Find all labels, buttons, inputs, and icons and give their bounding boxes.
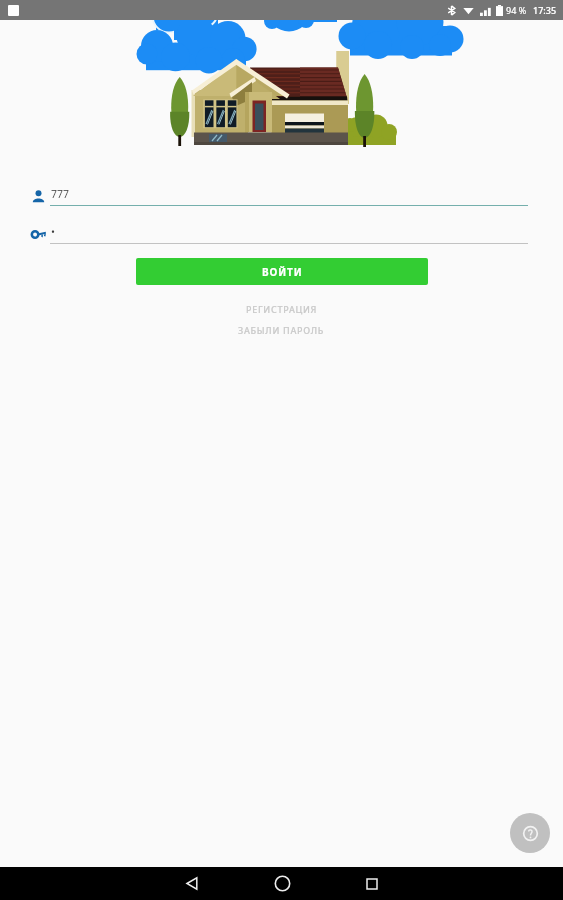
button[interactable]: ВОЙТИ [136, 258, 428, 285]
staticText: • [51, 225, 55, 239]
staticText: ЗАБЫЛИ ПАРОЛЬ [238, 324, 325, 336]
staticText: ВОЙТИ [262, 265, 303, 279]
button[interactable]: Home [252, 867, 312, 900]
button[interactable]: РЕГИСТРАЦИЯ [0, 300, 563, 318]
button[interactable]: Recent apps [342, 867, 402, 900]
staticText: 777 [51, 187, 70, 201]
button[interactable]: Help [510, 813, 550, 853]
staticText: 94 % [506, 4, 527, 16]
button[interactable]: ЗАБЫЛИ ПАРОЛЬ [0, 321, 563, 339]
button[interactable]: Back [162, 867, 222, 900]
staticText: РЕГИСТРАЦИЯ [246, 303, 318, 315]
staticText: 17:35 [533, 4, 557, 16]
